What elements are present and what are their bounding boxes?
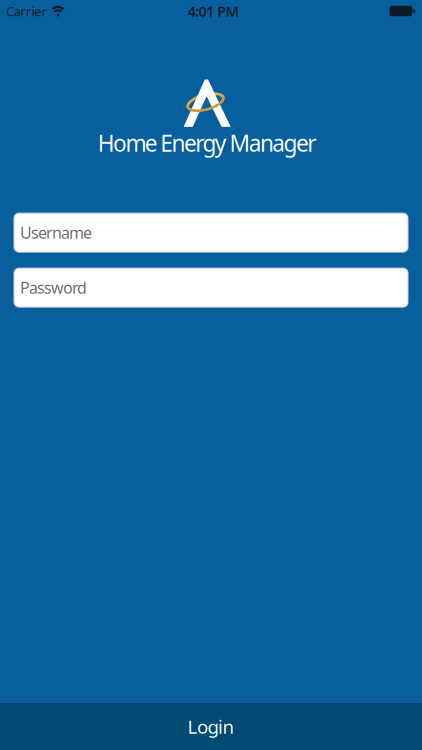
staticText: Home Energy Manager <box>98 128 316 158</box>
button[interactable]: Password <box>0 268 422 307</box>
staticText: Carrier <box>6 2 48 20</box>
staticText: Username <box>20 222 92 243</box>
staticText: Login <box>187 714 234 739</box>
staticText: Password <box>20 277 87 298</box>
button[interactable]: Login <box>0 703 422 750</box>
button[interactable]: Username <box>0 213 422 252</box>
staticText: 4:01 PM <box>187 1 239 21</box>
